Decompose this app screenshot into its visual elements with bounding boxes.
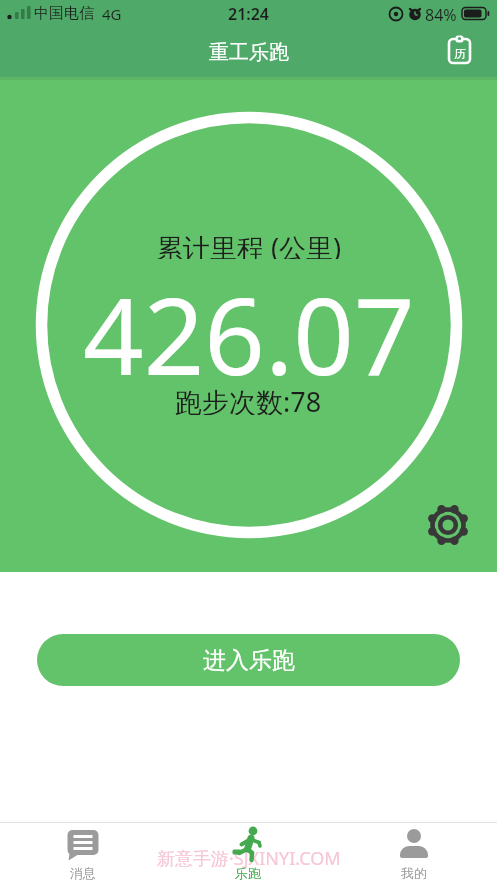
button[interactable]: 消息 (0, 823, 165, 883)
staticText: 新意手游·SJXINYI.COM (157, 846, 341, 871)
staticText: 累计里程 (公里) (156, 229, 342, 259)
button[interactable] (425, 502, 471, 548)
staticText: 跑步次数:78 (175, 383, 322, 415)
staticText: 中国电信 (34, 4, 94, 23)
staticText: 84% (425, 4, 457, 26)
staticText: 消息 (70, 865, 96, 881)
button[interactable]: 我的 (331, 823, 497, 883)
staticText: 我的 (401, 865, 427, 881)
staticText: 历 (454, 46, 466, 61)
button[interactable]: 历 (443, 33, 477, 67)
staticText: 乐跑 (235, 865, 261, 881)
staticText: 4G (102, 4, 122, 24)
button[interactable]: 乐跑 (165, 823, 331, 883)
staticText: 426.07 (83, 262, 415, 392)
staticText: 重工乐跑 (209, 40, 289, 65)
button[interactable]: 进入乐跑 (37, 634, 460, 686)
staticText: 21:24 (228, 3, 270, 25)
staticText: 进入乐跑 (203, 646, 295, 675)
